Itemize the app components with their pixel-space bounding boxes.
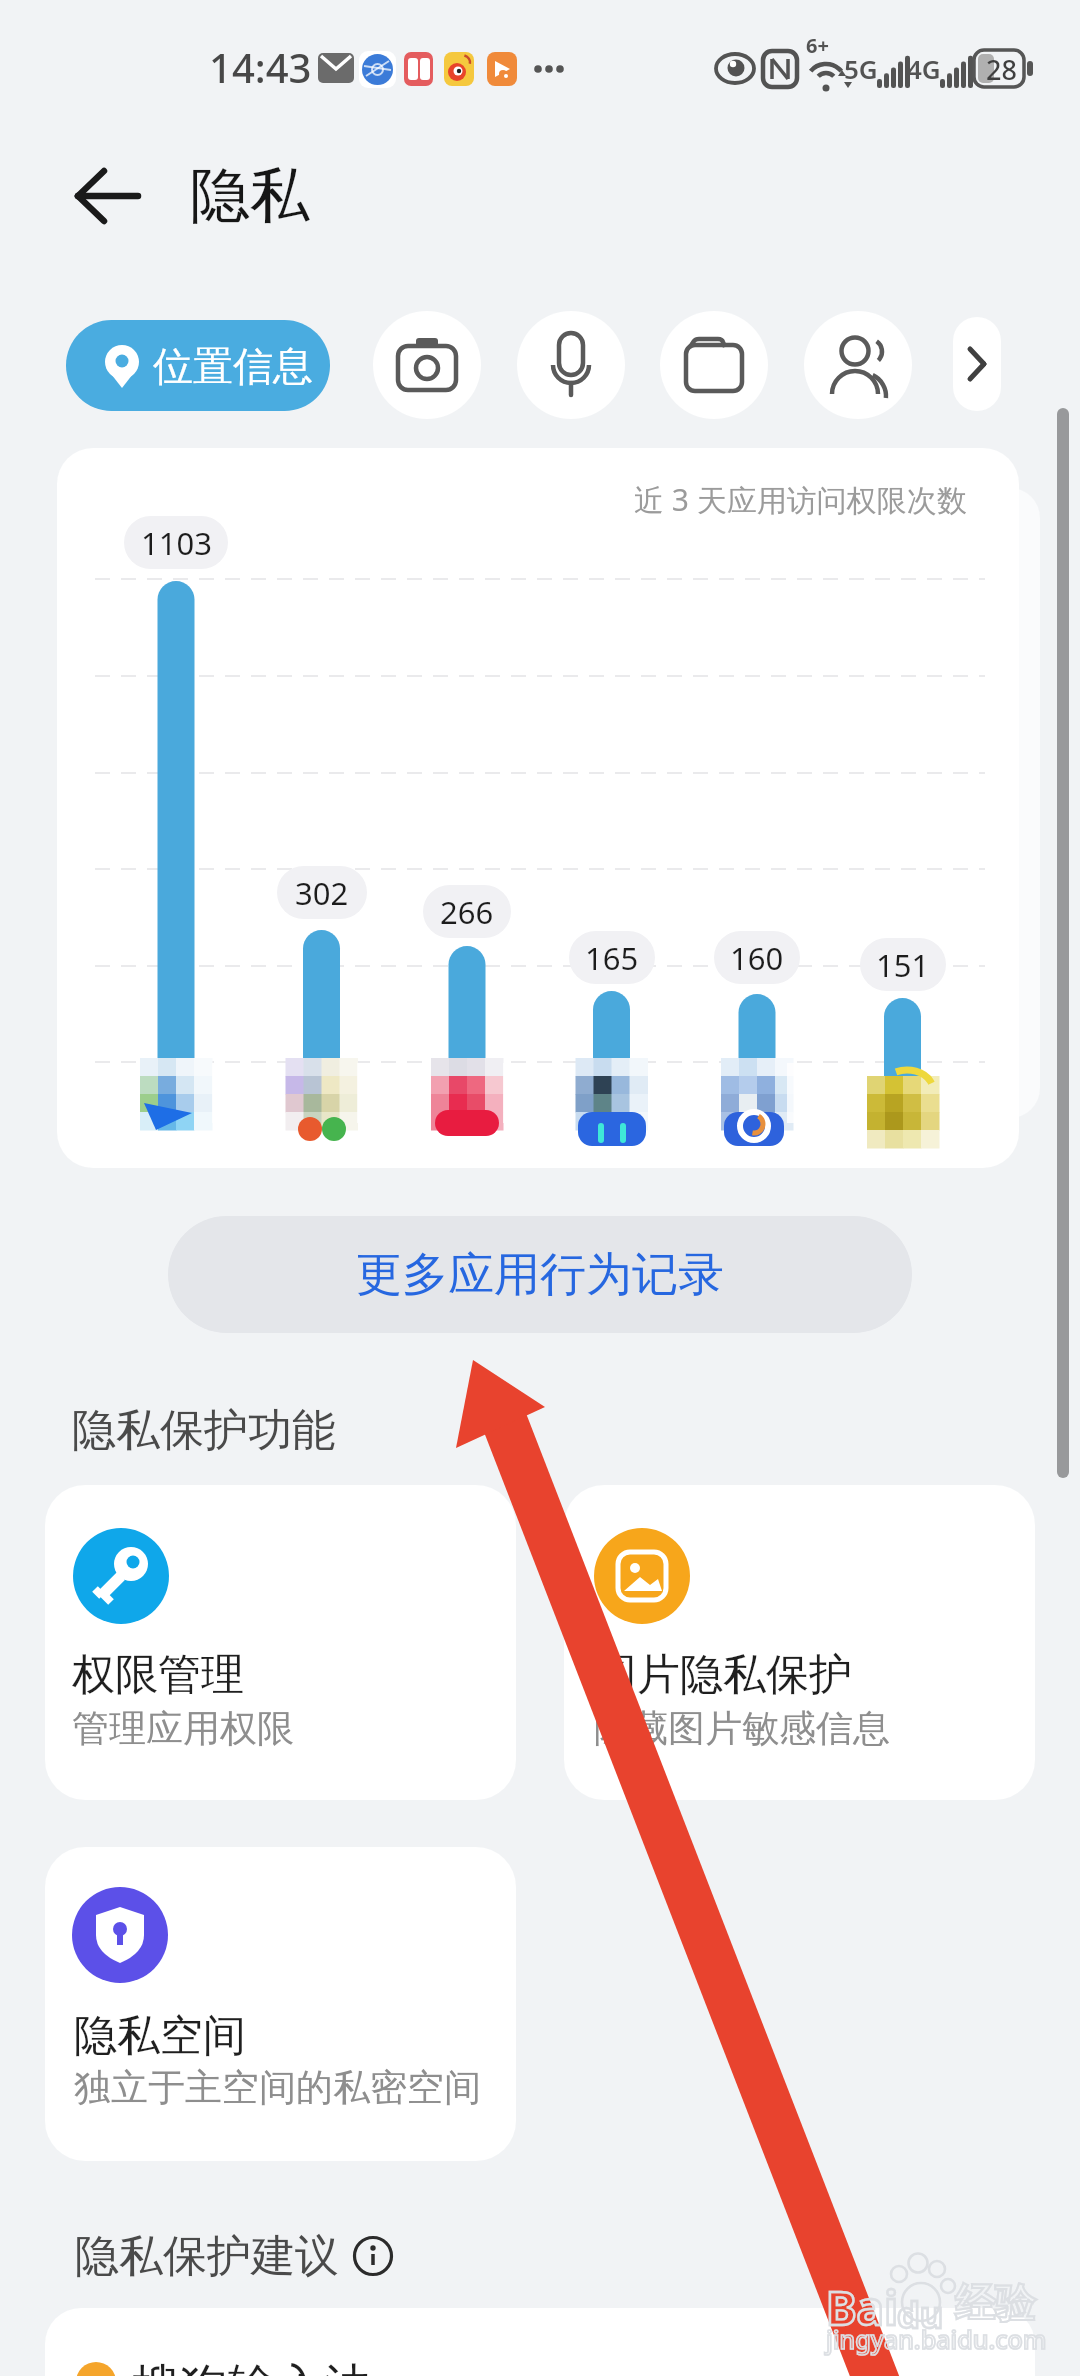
staticText: 1103 [141, 522, 212, 564]
staticText: 管理应用权限 [72, 1705, 294, 1752]
button[interactable]: 图片隐私保护 [564, 1485, 1035, 1800]
staticText: 权限管理 [72, 1648, 244, 1702]
button[interactable] [60, 160, 150, 232]
button[interactable] [373, 311, 481, 419]
button[interactable]: 隐私空间 [45, 1847, 516, 2161]
staticText: 隐私 [190, 158, 310, 234]
staticText: 隐藏图片敏感信息 [594, 1705, 890, 1752]
button[interactable] [804, 311, 912, 419]
staticText: 隐私保护功能 [72, 1403, 336, 1458]
staticText: 5G [844, 51, 878, 86]
button[interactable] [953, 317, 1001, 411]
staticText: 隐私空间 [74, 2009, 246, 2063]
staticText: 4G [907, 51, 941, 86]
staticText: du [897, 2290, 944, 2334]
staticText: 更多应用行为记录 [356, 1246, 724, 1304]
button[interactable]: 近 3 天应用访问权限次数 [57, 448, 1019, 1168]
button[interactable] [660, 311, 768, 419]
staticText: 165 [585, 937, 639, 979]
button[interactable]: 位置信息 [66, 320, 330, 411]
staticText: 独立于主空间的私密空间 [74, 2064, 481, 2111]
staticText: Bai [826, 2276, 898, 2332]
staticText: 151 [876, 944, 930, 986]
staticText: 6+ [806, 32, 829, 59]
staticText: 位置信息 [153, 341, 313, 391]
staticText: 近 3 天应用访问权限次数 [634, 479, 967, 519]
staticText: 28 [986, 51, 1017, 88]
staticText: 160 [730, 937, 784, 979]
button[interactable]: 更多应用行为记录 [168, 1216, 912, 1333]
staticText: 302 [295, 872, 349, 914]
staticText: 14:43 [209, 40, 312, 92]
staticText: 隐私保护建议 [75, 2229, 339, 2284]
staticText: jingyan.baidu.com [826, 2322, 1047, 2356]
button[interactable]: 权限管理 [45, 1485, 516, 1800]
button[interactable] [517, 311, 625, 419]
staticText: 图片隐私保护 [594, 1648, 852, 1702]
staticText: 经验 [955, 2278, 1035, 2328]
staticText: 266 [440, 891, 494, 933]
staticText: 搜狗输入法 [132, 2357, 372, 2376]
button[interactable]: 搜狗输入法 [45, 2308, 1035, 2376]
